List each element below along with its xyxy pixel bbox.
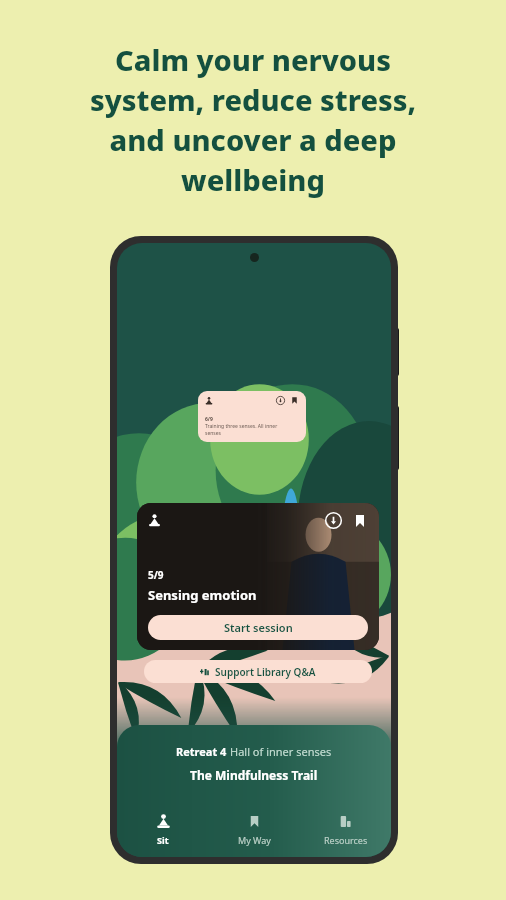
staticText: 6/9 — [205, 416, 213, 423]
button[interactable]: Support Library Q&A — [144, 660, 372, 683]
button[interactable]: Download — [325, 512, 342, 529]
other: Meditation — [148, 514, 161, 527]
button[interactable]: My Way — [209, 803, 300, 857]
staticText: Start session — [224, 620, 293, 635]
staticText: Support Library Q&A — [215, 665, 316, 679]
staticText: 5/9 — [148, 568, 164, 582]
staticText: Retreat 4 — [176, 744, 230, 759]
staticText: Sensing emotion — [148, 586, 257, 604]
staticText: Sit — [157, 834, 169, 846]
button[interactable]: Sit — [117, 803, 209, 857]
staticText: My Way — [238, 834, 271, 846]
staticText: Resources — [324, 834, 368, 846]
staticText: Calm your nervous system, reduce stress,… — [0, 40, 506, 200]
staticText: Training three senses. All inner senses — [205, 423, 278, 437]
button[interactable]: Bookmark — [352, 513, 368, 529]
button[interactable]: Start session — [148, 615, 368, 640]
button[interactable]: 6/9 — [198, 391, 306, 442]
staticText: The Mindfulness Trail — [190, 767, 318, 783]
staticText: Hall of inner senses — [230, 744, 332, 759]
button[interactable]: Resources — [300, 803, 391, 857]
